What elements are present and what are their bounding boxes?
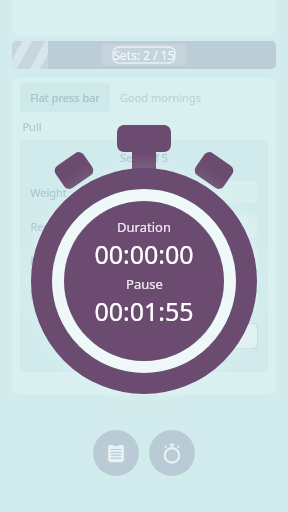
other: Stopwatch (0, 0, 288, 512)
button[interactable] (116, 181, 258, 203)
button[interactable]: 02:00 (116, 283, 258, 305)
staticText: Sets: 2 / 15 (113, 47, 175, 63)
staticText: Repeat (30, 219, 67, 234)
button[interactable] (232, 323, 258, 349)
staticText: 02:00 (221, 287, 250, 302)
staticText: Flat press bar (30, 90, 100, 105)
button[interactable]: Exercise log (93, 430, 139, 476)
staticText: Pause (126, 275, 163, 293)
button[interactable]: Good mornings (110, 83, 211, 112)
button[interactable]: Sets: 2 / 15 (12, 41, 276, 69)
staticText: Good mornings (120, 90, 201, 105)
staticText: Pull (22, 119, 42, 134)
staticText: Pause (30, 287, 62, 302)
staticText: 00:01:55 (94, 294, 194, 328)
staticText: Repetitions (30, 253, 89, 268)
button[interactable] (116, 215, 258, 237)
staticText: 00:00:00 (94, 237, 194, 271)
button[interactable]: Stopwatch (149, 430, 195, 476)
staticText: finished (182, 329, 224, 344)
button[interactable] (116, 249, 258, 271)
staticText: Weight (30, 185, 67, 200)
staticText: Duration (117, 218, 171, 236)
staticText: Set 3 of 5 (120, 150, 168, 165)
button[interactable]: Flat press bar (20, 83, 110, 112)
